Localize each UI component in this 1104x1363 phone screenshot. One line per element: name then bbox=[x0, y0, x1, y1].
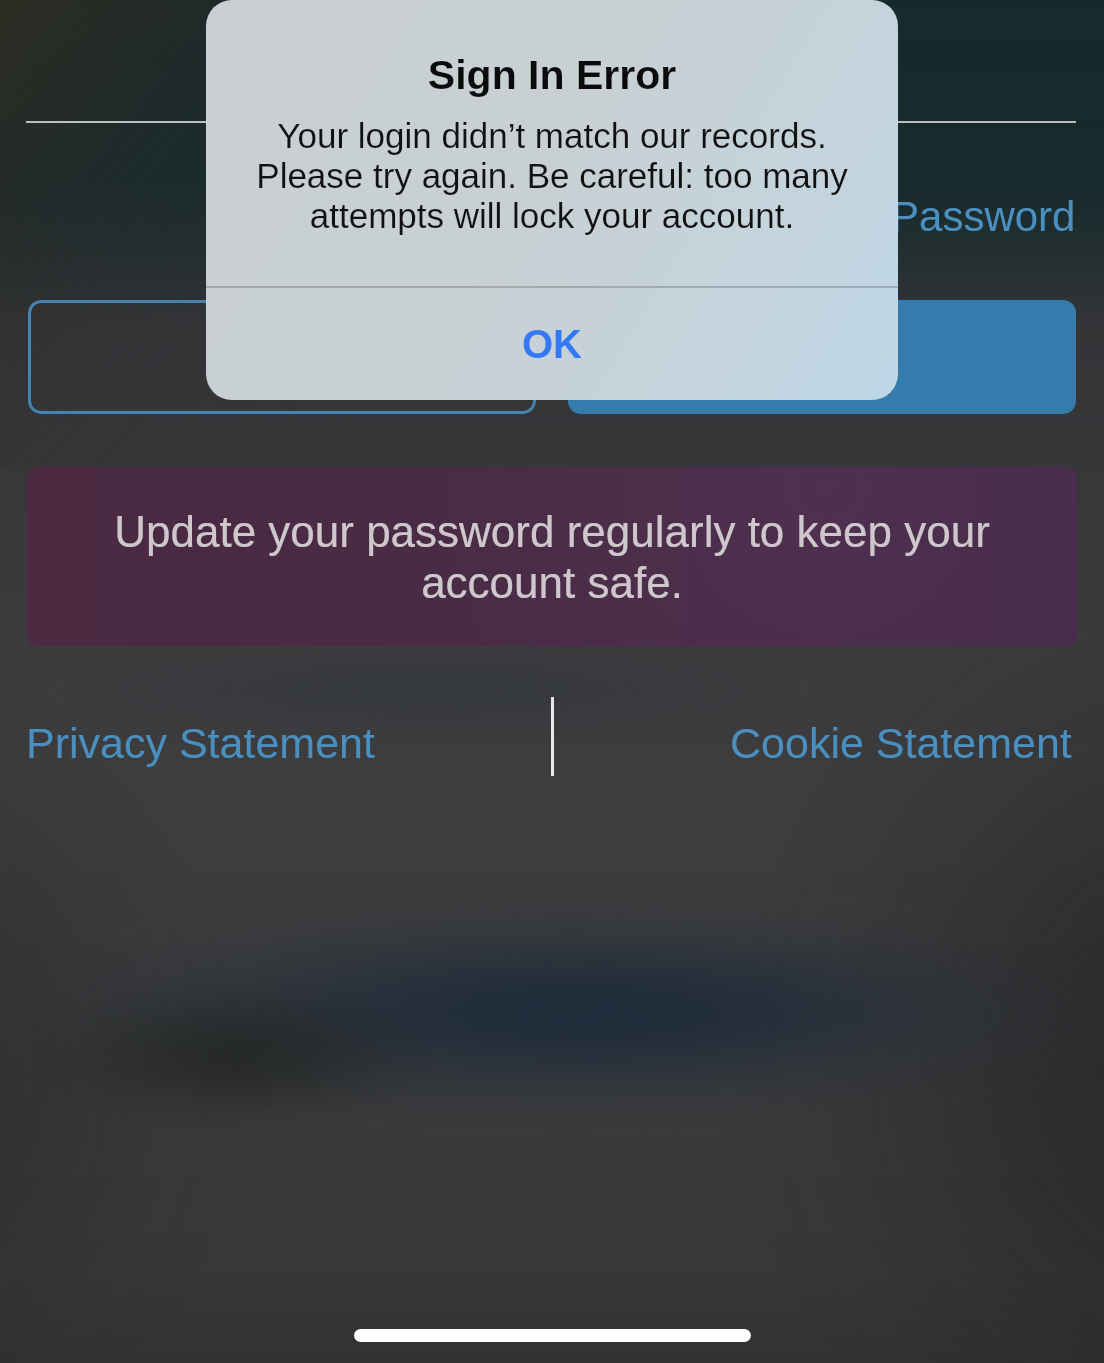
staticText: Update your password regularly to keep y… bbox=[114, 507, 990, 607]
button[interactable]: Cookie Statement bbox=[572, 703, 1072, 783]
button[interactable]: Forgot Password bbox=[604, 183, 1076, 249]
button[interactable]: Sign in bbox=[568, 300, 1076, 414]
staticText: Sign In Error bbox=[206, 52, 898, 98]
button[interactable]: Create account bbox=[28, 300, 536, 414]
staticText: Your login didn’t match our records. Ple… bbox=[206, 116, 898, 235]
staticText: Privacy Statement bbox=[26, 719, 375, 767]
button[interactable]: Privacy Statement bbox=[26, 703, 526, 783]
staticText: Cookie Statement bbox=[730, 719, 1072, 767]
staticText: OK bbox=[522, 322, 582, 367]
button[interactable]: OK bbox=[206, 288, 898, 400]
staticText: Forgot Password bbox=[758, 193, 1076, 240]
